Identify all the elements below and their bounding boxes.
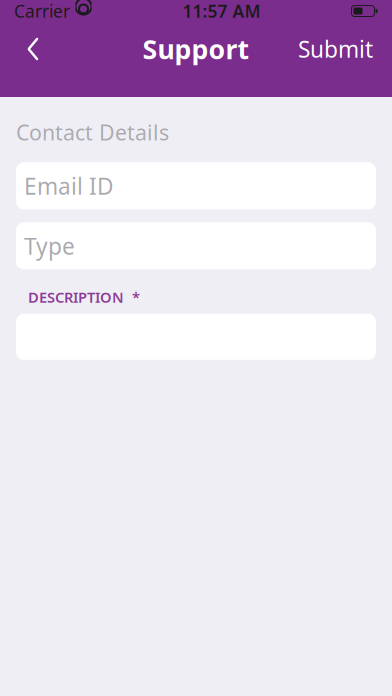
- button[interactable]: Type: [16, 222, 376, 269]
- button[interactable]: Back: [11, 27, 55, 71]
- staticText: Carrier: [14, 0, 70, 22]
- button[interactable]: Email ID: [16, 162, 376, 209]
- staticText: DESCRIPTION *: [28, 287, 140, 307]
- staticText: 11:57 AM: [182, 0, 260, 22]
- staticText: Contact Details: [16, 118, 169, 146]
- staticText: Support: [142, 31, 249, 67]
- staticText: Submit: [298, 34, 373, 64]
- staticText: Email ID: [24, 171, 114, 201]
- staticText: Type: [24, 231, 75, 261]
- button[interactable]: Submit: [290, 27, 381, 71]
